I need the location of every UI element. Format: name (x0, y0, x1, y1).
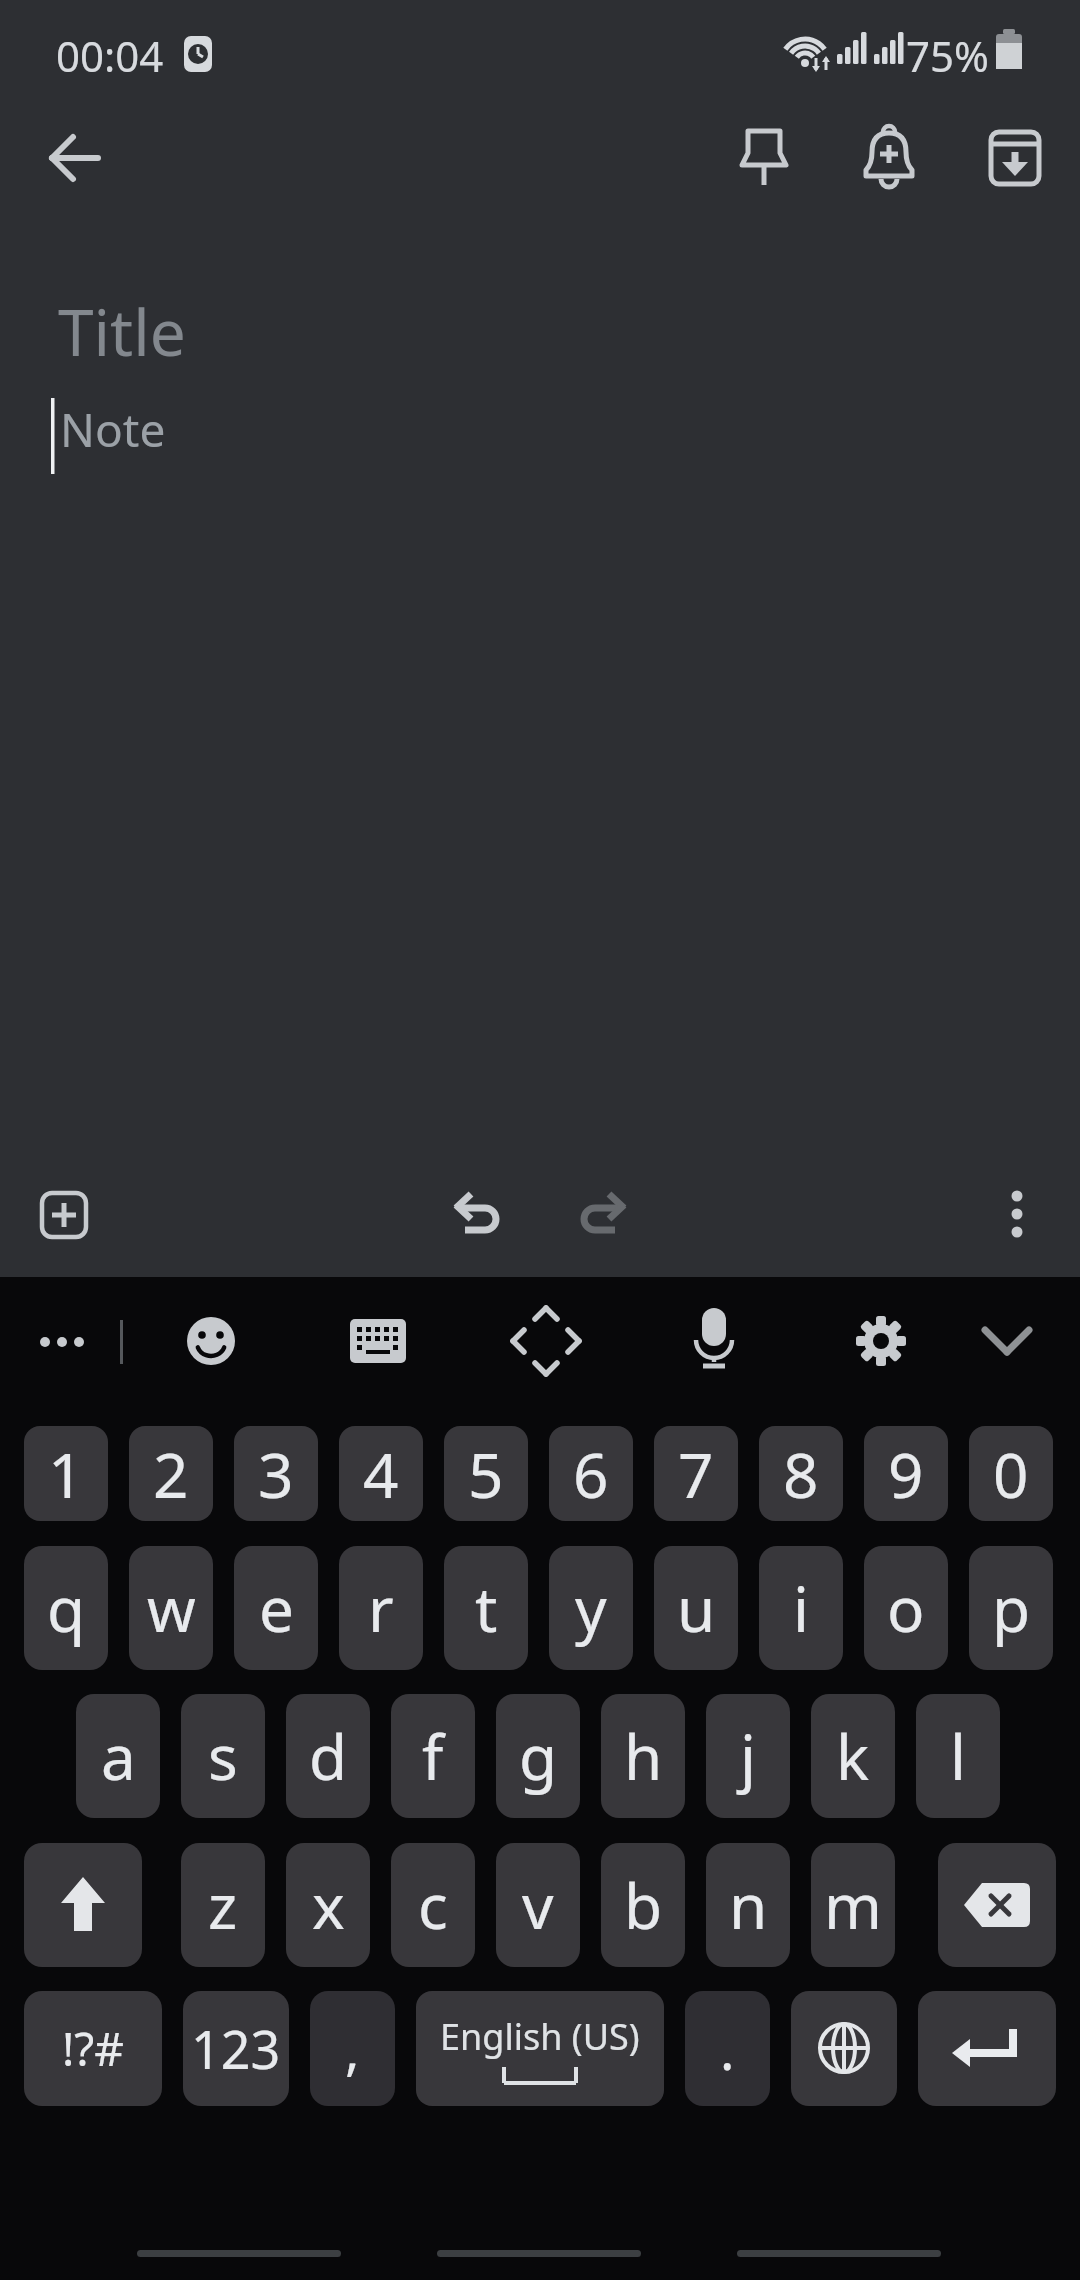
staticText: j (740, 1714, 756, 1798)
button[interactable] (918, 1991, 1056, 2106)
button[interactable] (736, 128, 792, 190)
button[interactable]: d (286, 1694, 370, 1818)
staticText: c (418, 1863, 448, 1947)
staticText: b (624, 1863, 663, 1947)
button[interactable] (24, 1843, 142, 1967)
button[interactable]: l (916, 1694, 1000, 1818)
staticText: 8 (783, 1432, 819, 1516)
staticText: 4 (363, 1432, 399, 1516)
button[interactable]: c (391, 1843, 475, 1967)
button[interactable] (853, 1313, 909, 1369)
staticText: English (US) (440, 2012, 640, 2061)
button[interactable]: g (496, 1694, 580, 1818)
staticText: f (422, 1714, 444, 1798)
staticText: m (824, 1863, 882, 1947)
button[interactable]: x (286, 1843, 370, 1967)
button[interactable] (452, 1188, 504, 1240)
button[interactable]: i (759, 1546, 843, 1670)
staticText: 5 (468, 1432, 504, 1516)
button[interactable]: 4 (339, 1426, 423, 1521)
button[interactable]: e (234, 1546, 318, 1670)
button[interactable]: n (706, 1843, 790, 1967)
staticText: d (309, 1714, 348, 1798)
button[interactable]: z (181, 1843, 265, 1967)
button[interactable]: 9 (864, 1426, 948, 1521)
staticText: i (793, 1566, 809, 1650)
button[interactable]: 0 (969, 1426, 1053, 1521)
staticText: s (208, 1714, 238, 1798)
staticText: 6 (573, 1432, 609, 1516)
button[interactable]: Note (60, 398, 460, 462)
staticText: v (522, 1863, 554, 1947)
button[interactable] (861, 126, 917, 192)
button[interactable] (40, 1191, 88, 1239)
button[interactable]: b (601, 1843, 685, 1967)
button[interactable] (36, 1322, 92, 1362)
button[interactable]: k (811, 1694, 895, 1818)
button[interactable]: 6 (549, 1426, 633, 1521)
staticText: 2 (153, 1432, 189, 1516)
button[interactable]: t (444, 1546, 528, 1670)
staticText: r (368, 1566, 394, 1650)
staticText: 7 (678, 1432, 714, 1516)
staticText: o (887, 1566, 925, 1650)
staticText: g (519, 1714, 558, 1798)
button[interactable] (938, 1843, 1056, 1967)
button[interactable]: o (864, 1546, 948, 1670)
button[interactable]: 1 (24, 1426, 108, 1521)
staticText: a (101, 1714, 136, 1798)
staticText: y (575, 1566, 607, 1650)
button[interactable]: r (339, 1546, 423, 1670)
button[interactable] (692, 1308, 736, 1370)
staticText: z (208, 1863, 238, 1947)
staticText: u (677, 1566, 716, 1650)
staticText: 3 (258, 1432, 294, 1516)
button[interactable]: . (685, 1991, 770, 2106)
button[interactable]: 7 (654, 1426, 738, 1521)
staticText: q (47, 1566, 86, 1650)
button[interactable]: !?# (24, 1991, 162, 2106)
button[interactable]: English (US) (416, 1991, 664, 2106)
button[interactable] (791, 1991, 897, 2106)
staticText: 75% (906, 27, 998, 83)
button[interactable]: p (969, 1546, 1053, 1670)
button[interactable]: m (811, 1843, 895, 1967)
button[interactable]: f (391, 1694, 475, 1818)
staticText: 9 (888, 1432, 924, 1516)
button[interactable]: 2 (129, 1426, 213, 1521)
button[interactable]: w (129, 1546, 213, 1670)
staticText: !?# (62, 2017, 125, 2080)
staticText: 1 (48, 1432, 84, 1516)
button[interactable]: y (549, 1546, 633, 1670)
button[interactable]: v (496, 1843, 580, 1967)
button[interactable]: 123 (183, 1991, 289, 2106)
staticText: l (950, 1714, 966, 1798)
staticText: n (729, 1863, 768, 1947)
button[interactable] (186, 1316, 236, 1366)
button[interactable]: q (24, 1546, 108, 1670)
button[interactable] (350, 1319, 406, 1363)
staticText: x (312, 1863, 345, 1947)
button[interactable] (510, 1305, 582, 1377)
button[interactable]: 3 (234, 1426, 318, 1521)
button[interactable]: a (76, 1694, 160, 1818)
button[interactable] (982, 1325, 1032, 1359)
button[interactable]: 5 (444, 1426, 528, 1521)
button[interactable]: , (310, 1991, 395, 2106)
button[interactable] (48, 131, 102, 185)
button[interactable] (576, 1188, 628, 1240)
staticText: e (259, 1566, 294, 1650)
button[interactable]: h (601, 1694, 685, 1818)
button[interactable] (1006, 1188, 1028, 1240)
staticText: p (992, 1566, 1031, 1650)
staticText: 0 (993, 1432, 1029, 1516)
staticText: h (624, 1714, 663, 1798)
button[interactable]: j (706, 1694, 790, 1818)
button[interactable]: Title (58, 288, 558, 378)
staticText: 123 (191, 2013, 281, 2084)
staticText: t (475, 1566, 498, 1650)
button[interactable]: u (654, 1546, 738, 1670)
button[interactable] (989, 130, 1041, 186)
button[interactable]: 8 (759, 1426, 843, 1521)
button[interactable]: s (181, 1694, 265, 1818)
